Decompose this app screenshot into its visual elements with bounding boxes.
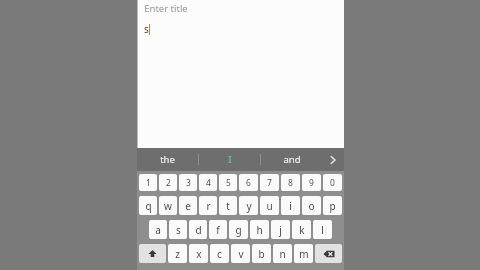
- button[interactable]: and: [261, 148, 322, 171]
- staticText: l: [321, 223, 324, 237]
- button[interactable]: x: [189, 244, 208, 263]
- staticText: 6: [246, 177, 251, 189]
- staticText: e: [185, 199, 191, 213]
- staticText: 1: [146, 177, 151, 189]
- staticText: 4: [206, 177, 211, 189]
- button[interactable]: n: [273, 244, 292, 263]
- staticText: f: [216, 223, 220, 237]
- staticText: and: [283, 153, 301, 166]
- staticText: d: [195, 223, 202, 237]
- button[interactable]: l: [313, 220, 332, 239]
- button[interactable]: w: [159, 196, 177, 215]
- button[interactable]: i: [281, 196, 300, 215]
- staticText: the: [160, 153, 175, 166]
- button[interactable]: e: [179, 196, 197, 215]
- staticText: 3: [186, 177, 191, 189]
- button[interactable]: a: [149, 220, 167, 239]
- button[interactable]: o: [302, 196, 321, 215]
- staticText: 2: [166, 177, 171, 189]
- button[interactable]: b: [252, 244, 271, 263]
- staticText: 7: [267, 177, 272, 189]
- button[interactable]: 5: [219, 174, 237, 191]
- button[interactable]: c: [210, 244, 229, 263]
- button[interactable]: Backspace: [315, 244, 342, 263]
- button[interactable]: 0: [323, 174, 342, 191]
- staticText: v: [238, 247, 244, 261]
- button[interactable]: I: [199, 148, 260, 171]
- staticText: k: [299, 223, 305, 237]
- button[interactable]: y: [239, 196, 258, 215]
- staticText: y: [246, 199, 252, 213]
- button[interactable]: k: [292, 220, 311, 239]
- staticText: c: [217, 247, 222, 261]
- button[interactable]: 3: [179, 174, 197, 191]
- staticText: i: [289, 199, 292, 213]
- button[interactable]: g: [229, 220, 248, 239]
- button[interactable]: 1: [139, 174, 157, 191]
- button[interactable]: 2: [159, 174, 177, 191]
- staticText: b: [258, 247, 265, 261]
- staticText: r: [206, 199, 211, 213]
- button[interactable]: 4: [199, 174, 217, 191]
- button[interactable]: 7: [260, 174, 279, 191]
- button[interactable]: f: [209, 220, 227, 239]
- button[interactable]: v: [231, 244, 250, 263]
- staticText: u: [266, 199, 273, 213]
- button[interactable]: h: [250, 220, 269, 239]
- staticText: t: [226, 199, 230, 213]
- button[interactable]: m: [294, 244, 313, 263]
- button[interactable]: u: [260, 196, 279, 215]
- staticText: w: [164, 199, 172, 213]
- staticText: o: [308, 199, 315, 213]
- staticText: h: [256, 223, 263, 237]
- button[interactable]: j: [271, 220, 290, 239]
- staticText: Enter title: [144, 2, 188, 15]
- button[interactable]: q: [139, 196, 157, 215]
- button[interactable]: z: [168, 244, 187, 263]
- staticText: q: [145, 199, 152, 213]
- button[interactable]: 8: [281, 174, 300, 191]
- staticText: a: [155, 223, 161, 237]
- staticText: x: [196, 247, 202, 261]
- staticText: s: [144, 22, 149, 36]
- button[interactable]: Shift: [139, 244, 166, 263]
- staticText: 0: [330, 177, 335, 189]
- staticText: p: [329, 199, 336, 213]
- button[interactable]: Enter title: [144, 1, 344, 16]
- button[interactable]: s: [169, 220, 187, 239]
- button[interactable]: 6: [239, 174, 258, 191]
- button[interactable]: the: [137, 148, 198, 171]
- staticText: g: [235, 223, 242, 237]
- button[interactable]: r: [199, 196, 217, 215]
- staticText: m: [299, 247, 309, 261]
- staticText: I: [228, 153, 232, 166]
- staticText: 9: [309, 177, 314, 189]
- staticText: 8: [288, 177, 293, 189]
- button[interactable]: More suggestions: [322, 148, 344, 171]
- staticText: z: [175, 247, 180, 261]
- staticText: s: [176, 223, 181, 237]
- button[interactable]: p: [323, 196, 342, 215]
- staticText: 5: [226, 177, 231, 189]
- staticText: n: [279, 247, 286, 261]
- staticText: j: [279, 223, 282, 237]
- button[interactable]: 9: [302, 174, 321, 191]
- button[interactable]: t: [219, 196, 237, 215]
- button[interactable]: d: [189, 220, 207, 239]
